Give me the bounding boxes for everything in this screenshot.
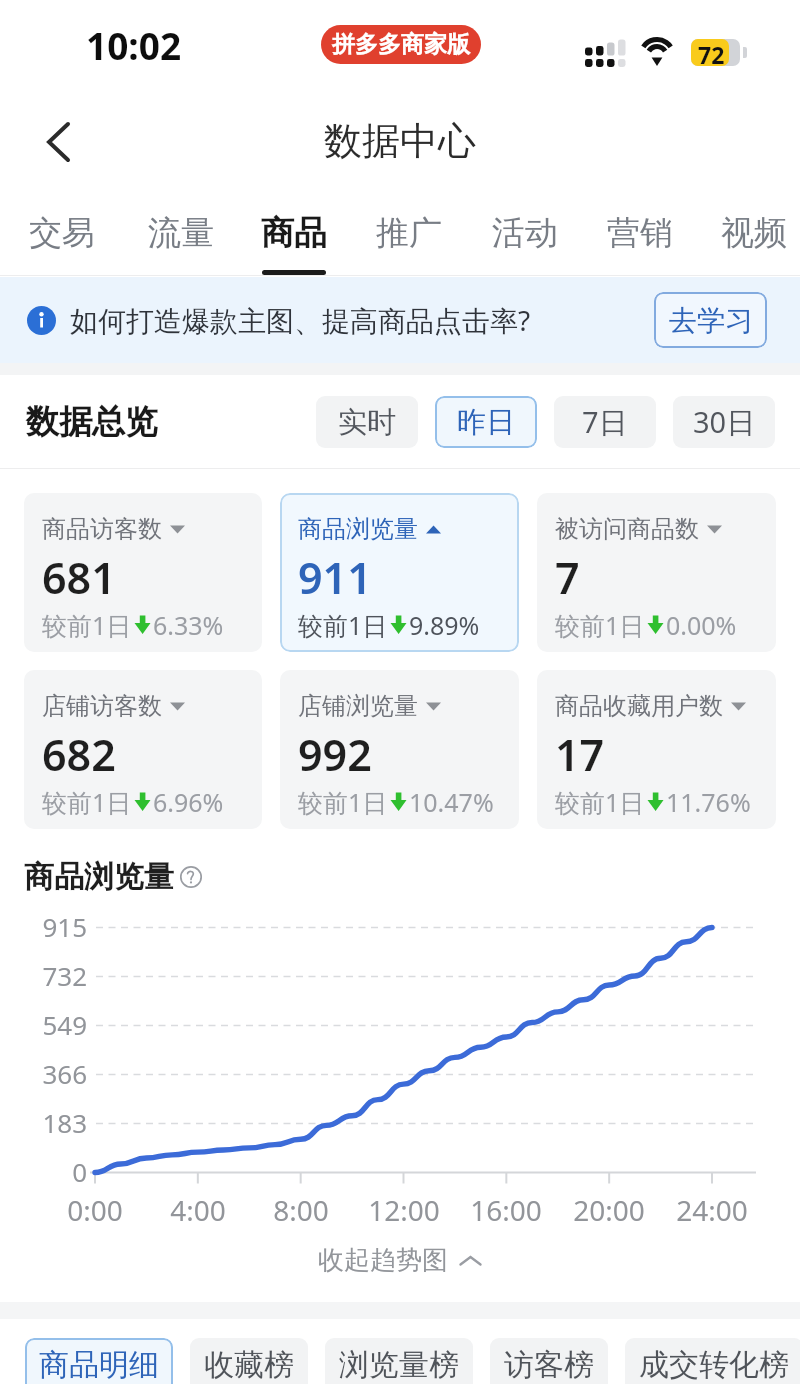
button[interactable]: 活动 [468,190,582,276]
staticText: 549 [0,1007,87,1042]
button[interactable]: 营销 [583,190,697,276]
button[interactable]: 收起趋势图 [318,1244,482,1277]
button[interactable]: 推广 [352,190,466,276]
staticText: 成交转化榜 [639,1346,789,1384]
staticText: 昨日 [457,404,515,441]
staticText: 6.96% [153,785,224,819]
button[interactable]: 昨日 [435,396,537,448]
staticText: 12:00 [334,1191,474,1229]
staticText: 较前1日 [555,608,645,642]
staticText: 16:00 [436,1191,576,1229]
button[interactable]: 被访问商品数 [537,493,776,652]
staticText: 营销 [607,212,673,254]
button[interactable]: 店铺浏览量 [280,670,519,829]
staticText: 较前1日 [42,785,132,819]
staticText: 收藏榜 [204,1346,294,1384]
staticText: 732 [0,958,87,993]
staticText: 11.76% [666,785,751,819]
staticText: 20:00 [539,1191,679,1229]
button[interactable]: 实时 [316,396,418,448]
staticText: 商品浏览量 [298,514,418,544]
staticText: 如何打造爆款主图、提高商品点击率? [70,301,531,339]
button[interactable]: 商品浏览量 [280,493,519,652]
button[interactable]: 收藏榜 [190,1338,308,1384]
staticText: 0.00% [666,608,737,642]
staticText: 682 [42,725,116,784]
staticText: 183 [0,1105,87,1140]
button[interactable]: 浏览量榜 [325,1338,473,1384]
staticText: 商品收藏用户数 [555,691,723,721]
button[interactable]: 交易 [5,190,119,276]
button[interactable]: 7日 [554,396,656,448]
staticText: 10.47% [409,785,494,819]
staticText: 活动 [492,212,558,254]
staticText: 915 [0,909,87,944]
staticText: 10:02 [86,20,182,70]
staticText: 较前1日 [555,785,645,819]
staticText: 72 [698,39,725,66]
staticText: 店铺浏览量 [298,691,418,721]
staticText: 0:00 [25,1191,165,1229]
staticText: 商品访客数 [42,514,162,544]
staticText: 拼多多商家版 [332,30,470,59]
staticText: 数据总览 [26,401,158,443]
other: Signal [585,39,627,68]
staticText: 视频 [721,212,787,254]
staticText: 商品明细 [39,1346,159,1384]
staticText: 24:00 [642,1191,782,1229]
staticText: 去学习 [669,303,753,338]
staticText: 366 [0,1056,87,1091]
staticText: 商品浏览量 [24,858,174,896]
staticText: 浏览量榜 [339,1346,459,1384]
staticText: 30日 [693,402,756,442]
staticText: 6.33% [153,608,224,642]
button[interactable]: 如何打造爆款主图、提高商品点击率? [27,301,531,339]
button[interactable]: 商品 [237,190,351,276]
staticText: 0 [0,1154,87,1189]
staticText: 收起趋势图 [318,1244,448,1277]
staticText: 商品 [261,212,327,254]
button[interactable]: 成交转化榜 [625,1338,800,1384]
staticText: 911 [298,548,372,607]
staticText: 较前1日 [42,608,132,642]
staticText: 数据中心 [324,117,476,165]
button[interactable]: 访客榜 [490,1338,608,1384]
button[interactable]: 去学习 [654,292,767,348]
staticText: 较前1日 [298,608,388,642]
staticText: 8:00 [231,1191,371,1229]
staticText: 992 [298,725,372,784]
button[interactable]: 流量 [124,190,238,276]
staticText: 4:00 [128,1191,268,1229]
staticText: 店铺访客数 [42,691,162,721]
button[interactable]: Back [0,92,100,190]
other: Wi-Fi [639,37,676,67]
staticText: 17 [555,725,605,784]
staticText: 被访问商品数 [555,514,699,544]
staticText: 7 [555,548,580,607]
button[interactable]: 商品访客数 [24,493,262,652]
staticText: 交易 [29,212,95,254]
staticText: 实时 [338,404,396,441]
staticText: 9.89% [409,608,480,642]
button[interactable]: 店铺访客数 [24,670,262,829]
button[interactable]: 商品收藏用户数 [537,670,776,829]
staticText: 681 [42,548,116,607]
staticText: 推广 [376,212,442,254]
staticText: 流量 [148,212,214,254]
staticText: 较前1日 [298,785,388,819]
staticText: 访客榜 [504,1346,594,1384]
staticText: 7日 [582,402,628,442]
button[interactable]: 商品明细 [25,1338,173,1384]
button[interactable]: 视频 [697,190,800,276]
button[interactable]: 30日 [673,396,775,448]
